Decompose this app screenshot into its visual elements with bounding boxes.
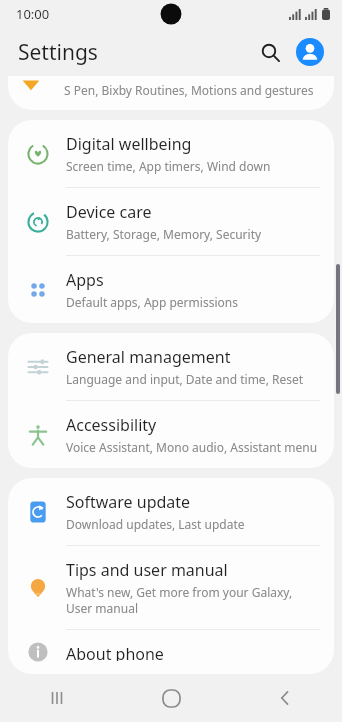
button[interactable]: Device care (8, 188, 334, 255)
staticText: Settings (18, 38, 98, 67)
staticText: Download updates, Last update (66, 516, 245, 532)
button[interactable]: Home (114, 674, 228, 722)
staticText: 10:00 (16, 5, 50, 23)
button[interactable]: Apps (8, 256, 334, 323)
staticText: S Pen, Bixby Routines, Motions and gestu… (64, 82, 314, 98)
staticText: General management (66, 346, 231, 368)
button[interactable]: Recents (0, 674, 114, 722)
staticText: Default apps, App permissions (66, 294, 238, 310)
staticText: Screen time, App timers, Wind down (66, 158, 271, 174)
staticText: Digital wellbeing (66, 133, 192, 155)
button[interactable]: Account (292, 34, 328, 70)
staticText: Software update (66, 491, 191, 513)
button[interactable]: Tips and user manual (8, 546, 334, 629)
staticText: What's new, Get more from your Galaxy, U… (66, 584, 318, 616)
button[interactable]: Search (252, 34, 288, 70)
staticText: Accessibility (66, 414, 157, 436)
staticText: About phone (66, 643, 164, 661)
button[interactable]: General management (8, 333, 334, 400)
button[interactable]: Back (228, 674, 342, 722)
staticText: Battery, Storage, Memory, Security (66, 226, 262, 242)
button[interactable]: Software update (8, 478, 334, 545)
button[interactable]: About phone (8, 630, 334, 674)
staticText: Device care (66, 201, 152, 223)
staticText: Voice Assistant, Mono audio, Assistant m… (66, 439, 318, 455)
button[interactable]: Digital wellbeing (8, 120, 334, 187)
staticText: Apps (66, 269, 104, 291)
staticText: Language and input, Date and time, Reset (66, 371, 304, 387)
staticText: Tips and user manual (66, 559, 228, 581)
button[interactable]: Accessibility (8, 401, 334, 468)
button[interactable]: S Pen, Bixby Routines, Motions and gestu… (8, 76, 334, 110)
